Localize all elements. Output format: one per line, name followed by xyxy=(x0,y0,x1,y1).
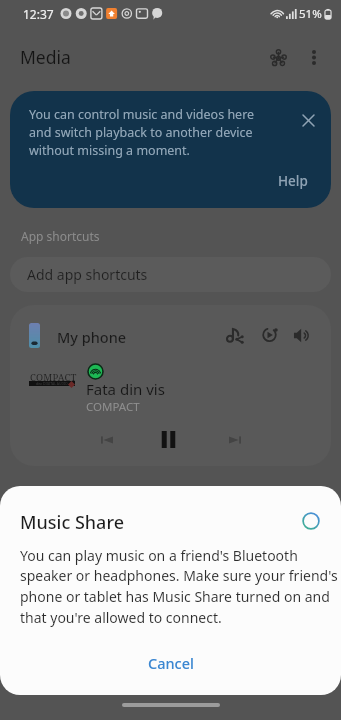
staticText: My phone xyxy=(57,327,127,347)
button[interactable]: Next xyxy=(219,424,250,455)
button[interactable]: Volume xyxy=(288,321,316,349)
staticText: 51% xyxy=(299,6,322,22)
staticText: disc DIGITAL AUDIO xyxy=(36,381,68,386)
staticText: Fata din vis xyxy=(86,379,165,399)
button[interactable]: More options xyxy=(297,40,331,74)
button[interactable]: Close xyxy=(296,108,320,132)
staticText: You can control music and videos here an… xyxy=(29,106,272,159)
button[interactable]: Previous xyxy=(91,424,122,455)
staticText: Music Share xyxy=(20,510,125,535)
staticText: You can play music on a friend's Bluetoo… xyxy=(20,546,339,627)
button[interactable]: Output device xyxy=(256,321,284,349)
button[interactable]: Pause xyxy=(150,421,186,457)
button[interactable]: Add app shortcuts xyxy=(10,257,331,292)
staticText: App shortcuts xyxy=(21,228,100,244)
button[interactable]: Cancel xyxy=(0,639,341,687)
staticText: Add app shortcuts xyxy=(27,265,148,284)
button[interactable]: Help xyxy=(272,170,314,192)
staticText: COMPACT xyxy=(86,399,140,415)
button[interactable]: Music share xyxy=(221,321,249,349)
staticText: Cancel xyxy=(148,653,194,673)
staticText: COMPACT xyxy=(30,371,77,384)
button[interactable]: You can control music and videos here an… xyxy=(10,91,331,208)
staticText: 12:37 xyxy=(23,6,54,22)
staticText: Media xyxy=(20,45,71,69)
staticText: Help xyxy=(278,172,308,190)
button[interactable]: Music Share xyxy=(259,38,297,76)
